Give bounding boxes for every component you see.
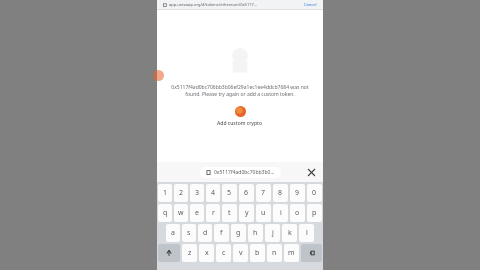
button[interactable]: t: [222, 204, 237, 222]
button[interactable]: x: [199, 244, 214, 262]
staticText: 1: [163, 188, 168, 198]
staticText: 0: [312, 188, 317, 198]
staticText: f: [220, 228, 223, 238]
staticText: 5: [227, 188, 232, 198]
button[interactable]: f: [214, 224, 229, 242]
button[interactable]: s: [182, 224, 196, 242]
staticText: y: [245, 208, 249, 218]
staticText: n: [272, 248, 277, 258]
button[interactable]: Backspace: [301, 244, 322, 262]
button[interactable]: 9: [290, 184, 305, 202]
button[interactable]: r: [206, 204, 220, 222]
button[interactable]: n: [267, 244, 282, 262]
button[interactable]: v: [233, 244, 248, 262]
button[interactable]: d: [198, 224, 212, 242]
button[interactable]: 3: [190, 184, 204, 202]
staticText: m: [288, 248, 295, 258]
staticText: 7: [261, 188, 266, 198]
button[interactable]: l: [299, 224, 314, 242]
staticText: s: [187, 228, 191, 238]
staticText: i: [280, 208, 282, 218]
button[interactable]: w: [174, 204, 188, 222]
button[interactable]: 2: [174, 184, 188, 202]
button[interactable]: m: [284, 244, 299, 262]
staticText: h: [253, 228, 258, 238]
staticText: k: [288, 228, 292, 238]
button[interactable]: q: [158, 204, 172, 222]
staticText: 0x5117f4ad0bc70bb3b0...: [214, 169, 275, 176]
button[interactable]: 7: [256, 184, 271, 202]
button[interactable]: a: [166, 224, 180, 242]
staticText: q: [163, 208, 168, 218]
button[interactable]: g: [231, 224, 246, 242]
staticText: t: [228, 208, 231, 218]
button[interactable]: k: [282, 224, 297, 242]
button[interactable]: y: [239, 204, 254, 222]
button[interactable]: u: [256, 204, 271, 222]
button[interactable]: 1: [158, 184, 172, 202]
staticText: u: [261, 208, 266, 218]
staticText: g: [236, 228, 241, 238]
staticText: p: [312, 208, 317, 218]
button[interactable]: 0x5117f4ad0bc70bb3b0...: [200, 167, 281, 178]
button[interactable]: 0: [307, 184, 322, 202]
staticText: 2: [179, 188, 184, 198]
button[interactable]: Close: [305, 166, 317, 178]
button[interactable]: Shift: [158, 244, 180, 262]
button[interactable]: 8: [273, 184, 288, 202]
staticText: w: [178, 208, 184, 218]
button[interactable]: Add custom crypto: [213, 105, 267, 128]
button[interactable]: 4: [206, 184, 220, 202]
staticText: Cancel: [304, 2, 317, 7]
button[interactable]: h: [248, 224, 263, 242]
button[interactable]: j: [265, 224, 280, 242]
staticText: b: [255, 248, 260, 258]
staticText: o: [295, 208, 300, 218]
staticText: 3: [195, 188, 200, 198]
staticText: 0x5117f4ad0bc706bb3b06ef29a1ec1ee4ddcb76…: [169, 84, 311, 98]
staticText: c: [222, 248, 226, 258]
button[interactable]: 6: [239, 184, 254, 202]
staticText: e: [195, 208, 199, 218]
staticText: z: [188, 248, 192, 258]
staticText: Add custom crypto: [217, 120, 263, 127]
staticText: app.uniswap.org/#/tokens/ethereum/0x5117…: [169, 2, 257, 7]
button[interactable]: c: [216, 244, 231, 262]
button[interactable]: 5: [222, 184, 237, 202]
staticText: x: [205, 248, 209, 258]
button[interactable]: b: [250, 244, 265, 262]
staticText: v: [239, 248, 243, 258]
staticText: d: [203, 228, 208, 238]
button[interactable]: o: [290, 204, 305, 222]
button[interactable]: e: [190, 204, 204, 222]
staticText: a: [171, 228, 175, 238]
button[interactable]: p: [307, 204, 322, 222]
staticText: 6: [244, 188, 249, 198]
button[interactable]: i: [273, 204, 288, 222]
staticText: 8: [278, 188, 283, 198]
staticText: 4: [211, 188, 216, 198]
staticText: j: [272, 228, 274, 238]
staticText: 9: [295, 188, 300, 198]
button[interactable]: z: [182, 244, 197, 262]
staticText: r: [212, 208, 215, 218]
staticText: l: [306, 228, 308, 238]
